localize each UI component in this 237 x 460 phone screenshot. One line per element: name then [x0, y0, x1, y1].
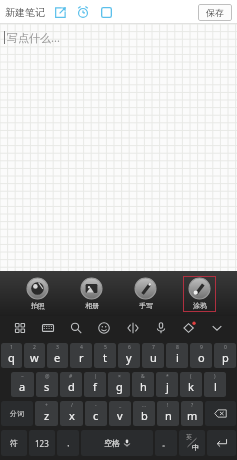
- staticText: 写点什么...: [7, 30, 60, 45]
- button[interactable]: Switch language: [179, 430, 205, 456]
- staticText: 相册: [85, 301, 99, 310]
- staticText: j: [166, 379, 169, 394]
- staticText: 英: [186, 433, 192, 441]
- staticText: &: [141, 373, 145, 380]
- staticText: b: [141, 408, 148, 423]
- button[interactable]: Search: [66, 318, 86, 338]
- staticText: 手写: [139, 301, 153, 310]
- button[interactable]: Emoji: [94, 318, 114, 338]
- staticText: z: [44, 408, 50, 423]
- staticText: n: [165, 408, 172, 423]
- button[interactable]: ×: [108, 372, 130, 397]
- button[interactable]: ~: [11, 372, 34, 397]
- staticText: ~: [21, 373, 24, 380]
- staticText: t: [103, 350, 107, 365]
- staticText: 0: [224, 344, 227, 351]
- button[interactable]: 拍照: [21, 276, 54, 312]
- button[interactable]: +: [35, 401, 58, 426]
- staticText: c: [93, 408, 99, 423]
- staticText: k: [188, 379, 194, 394]
- button[interactable]: ): [204, 372, 226, 397]
- staticText: 4: [80, 344, 83, 351]
- staticText: 5: [104, 344, 107, 351]
- staticText: 空格: [104, 438, 120, 448]
- staticText: 符: [10, 438, 18, 448]
- button[interactable]: 。: [155, 430, 177, 456]
- button[interactable]: Text cursor: [123, 318, 143, 338]
- button[interactable]: 空格: [81, 430, 153, 456]
- button[interactable]: Theme: [179, 318, 199, 338]
- staticText: 6: [128, 344, 131, 351]
- staticText: i: [176, 350, 179, 365]
- button[interactable]: ?: [181, 401, 203, 426]
- staticText: s: [44, 379, 50, 394]
- button[interactable]: ，: [57, 430, 79, 456]
- button[interactable]: 6: [118, 343, 140, 368]
- staticText: 2: [33, 344, 36, 351]
- button[interactable]: 分词: [1, 401, 33, 426]
- staticText: 中: [192, 443, 199, 452]
- button[interactable]: 保存: [198, 4, 232, 21]
- staticText: 新建笔记: [5, 6, 45, 19]
- button[interactable]: Voice input: [151, 318, 171, 338]
- button[interactable]: 4: [70, 343, 92, 368]
- staticText: g: [116, 379, 123, 394]
- button[interactable]: Checklist: [98, 4, 114, 20]
- button[interactable]: Share: [52, 4, 68, 20]
- staticText: l: [214, 379, 217, 394]
- button[interactable]: |: [84, 372, 106, 397]
- staticText: @: [45, 373, 50, 380]
- staticText: 123: [35, 438, 49, 449]
- staticText: u: [150, 350, 157, 365]
- button[interactable]: …: [133, 401, 155, 426]
- staticText: *: [166, 373, 169, 380]
- button[interactable]: 1: [1, 343, 22, 368]
- button[interactable]: -: [85, 401, 107, 426]
- staticText: ×: [118, 373, 121, 380]
- staticText: e: [54, 350, 61, 365]
- staticText: 涂鸦: [193, 301, 207, 310]
- button[interactable]: 涂鸦: [183, 276, 216, 312]
- staticText: r: [79, 350, 84, 365]
- staticText: d: [68, 379, 75, 394]
- button[interactable]: @: [36, 372, 58, 397]
- button[interactable]: 相册: [75, 276, 108, 312]
- staticText: …: [142, 402, 146, 409]
- staticText: -: [95, 402, 97, 409]
- staticText: 1: [10, 344, 13, 351]
- staticText: ，: [64, 438, 72, 448]
- staticText: #: [69, 373, 73, 380]
- button[interactable]: #: [60, 372, 82, 397]
- button[interactable]: 2: [24, 343, 45, 368]
- button[interactable]: 8: [166, 343, 188, 368]
- button[interactable]: Enter: [207, 430, 236, 456]
- button[interactable]: 符: [1, 430, 27, 456]
- staticText: a: [19, 379, 26, 394]
- button[interactable]: Keyboard layout: [38, 318, 58, 338]
- button[interactable]: Backspace: [205, 401, 236, 426]
- button[interactable]: *: [156, 372, 178, 397]
- button[interactable]: /: [60, 401, 83, 426]
- button[interactable]: 7: [142, 343, 164, 368]
- button[interactable]: 9: [190, 343, 212, 368]
- button[interactable]: 0: [214, 343, 236, 368]
- staticText: 7: [152, 344, 155, 351]
- button[interactable]: 5: [94, 343, 116, 368]
- button[interactable]: 3: [47, 343, 68, 368]
- staticText: +: [45, 402, 48, 409]
- staticText: ): [214, 373, 216, 380]
- button[interactable]: Hide keyboard: [207, 318, 227, 338]
- staticText: q: [8, 350, 15, 365]
- button[interactable]: 123: [29, 430, 55, 456]
- staticText: 。: [162, 438, 170, 448]
- button[interactable]: _: [109, 401, 131, 426]
- staticText: 3: [56, 344, 59, 351]
- button[interactable]: Reminder: [75, 4, 91, 20]
- button[interactable]: 手写: [129, 276, 162, 312]
- staticText: v: [117, 408, 123, 423]
- button[interactable]: (: [180, 372, 202, 397]
- button[interactable]: Apps: [10, 318, 30, 338]
- staticText: !: [167, 402, 169, 409]
- button[interactable]: &: [132, 372, 154, 397]
- button[interactable]: !: [157, 401, 179, 426]
